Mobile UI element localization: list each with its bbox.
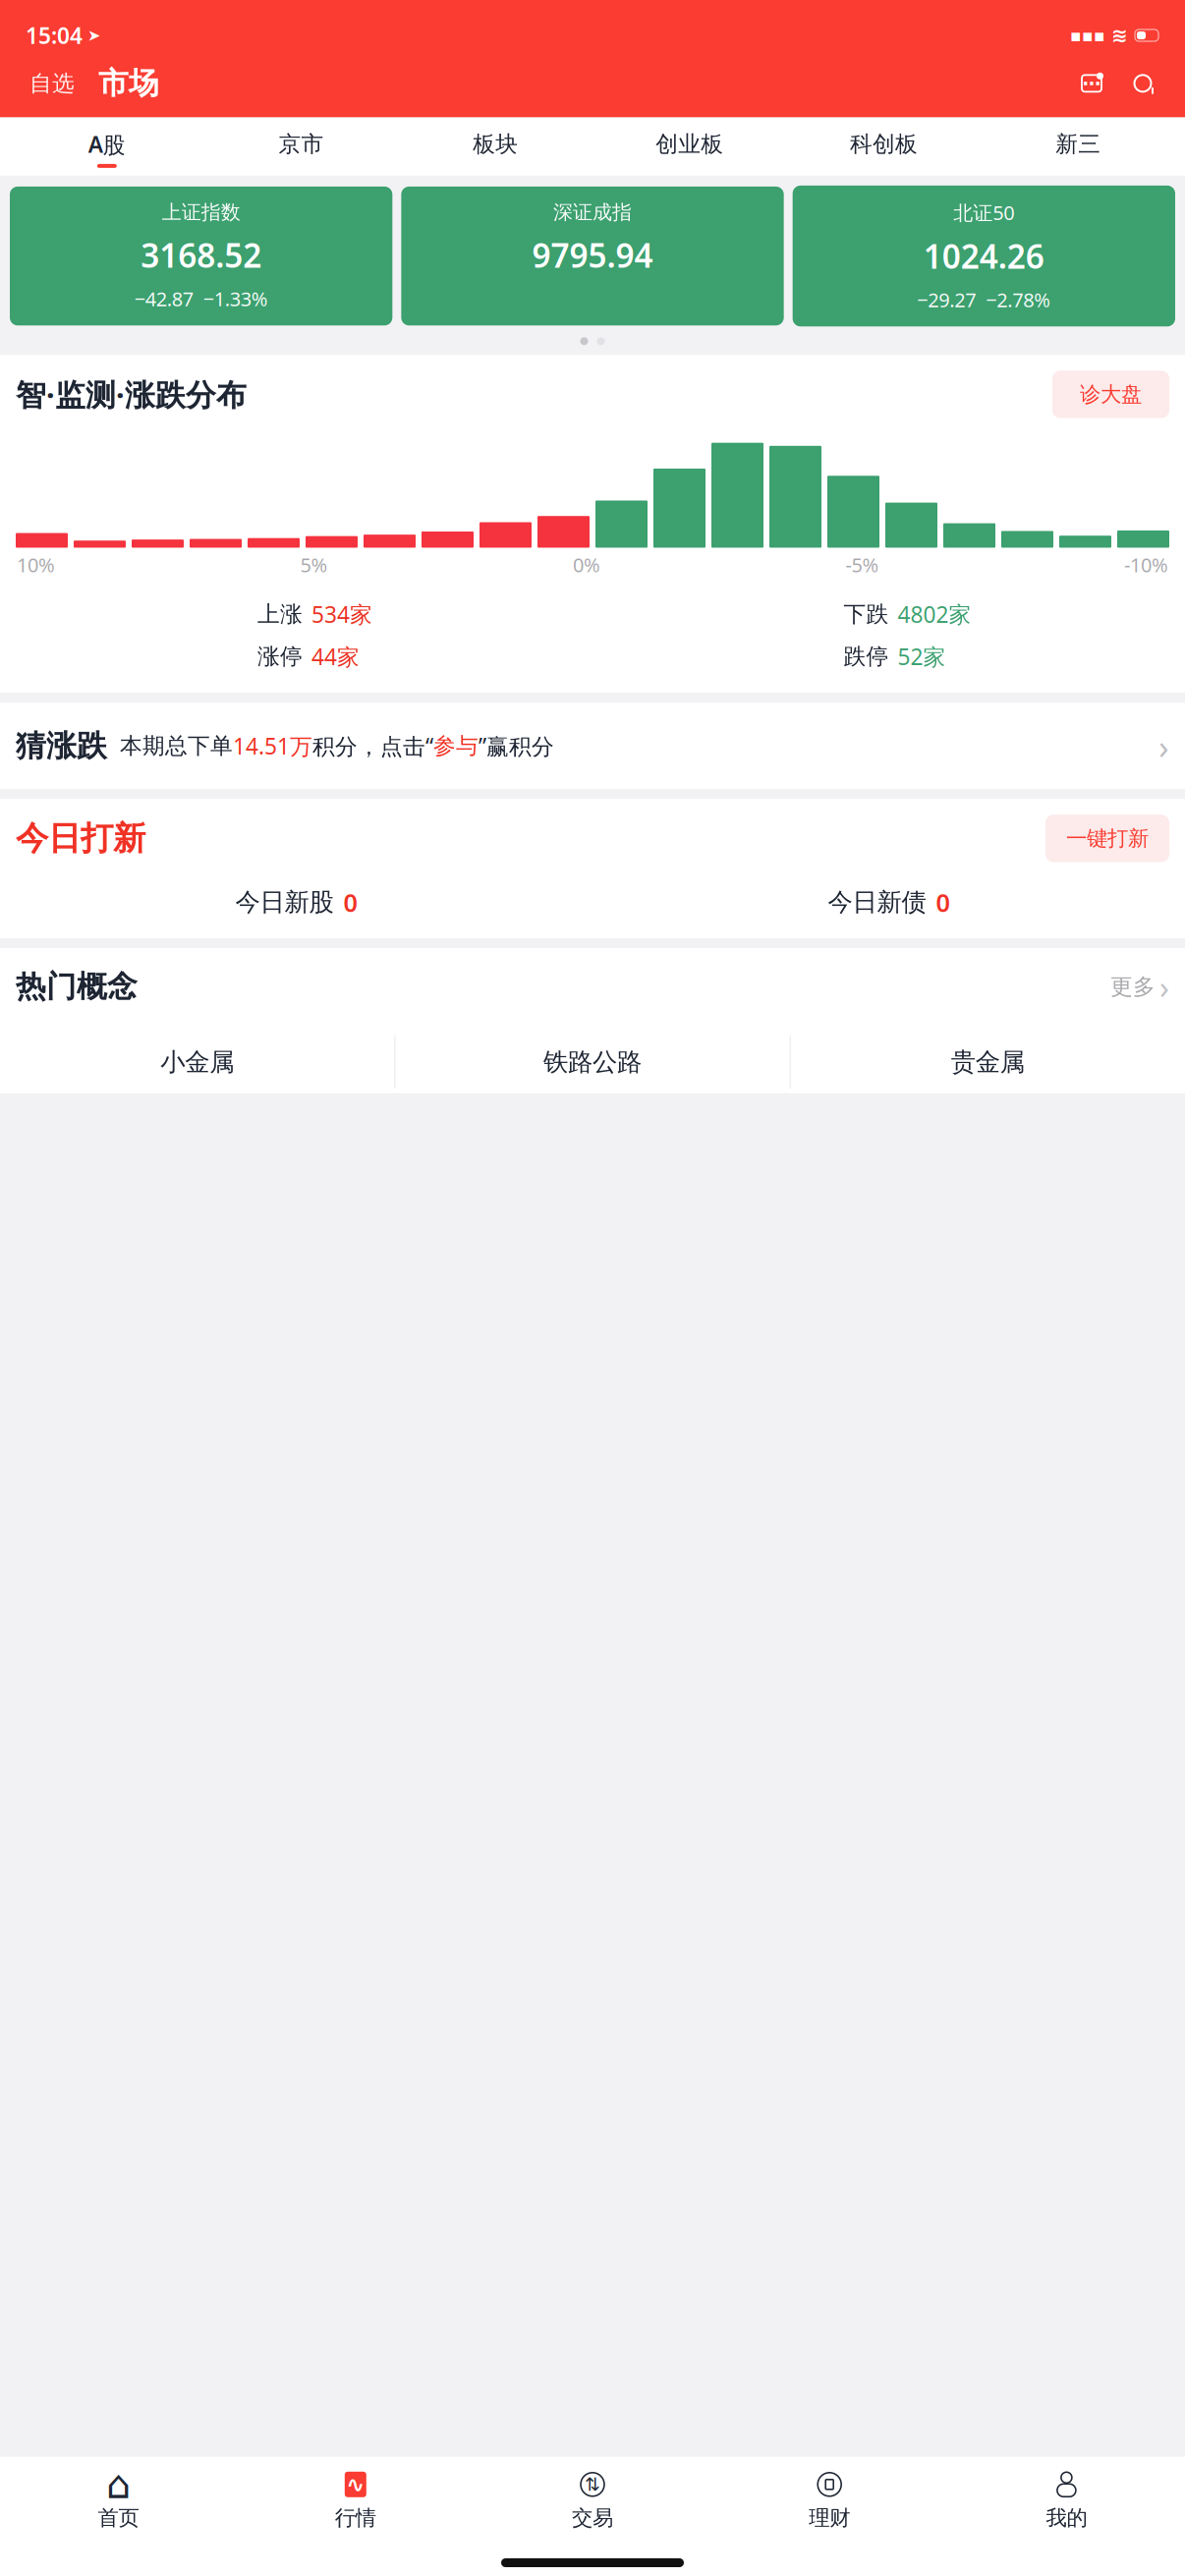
button[interactable]: 自选	[26, 64, 79, 103]
staticText: 猜涨跌	[16, 727, 107, 764]
staticText: 今日新股	[235, 887, 334, 917]
staticText: 今日打新	[16, 818, 145, 858]
staticText: 我的	[1046, 2505, 1087, 2531]
staticText: 小金属	[160, 1047, 234, 1077]
button[interactable]: 贵金属	[791, 1031, 1185, 1093]
staticText: 3168.52	[141, 233, 262, 277]
staticText: A股	[88, 129, 126, 159]
staticText: 0	[936, 886, 950, 919]
staticText: 参与	[433, 732, 479, 760]
staticText: 15:04	[26, 21, 83, 50]
staticText: 行情	[335, 2505, 376, 2531]
button[interactable]: 小金属	[0, 1031, 394, 1093]
button[interactable]: 创业板	[592, 131, 787, 175]
button[interactable]: 一键打新	[1045, 815, 1169, 862]
staticText: 热门概念	[16, 968, 138, 1005]
button[interactable]: ⌂	[0, 2467, 237, 2535]
staticText: 深证成指	[553, 200, 632, 224]
staticText: ⇅	[585, 2474, 600, 2495]
staticText: 智·监测·涨跌分布	[16, 374, 247, 414]
staticText: 52家	[898, 642, 946, 671]
staticText: −29.27 −2.78%	[917, 287, 1051, 313]
staticText: ”赢积分	[479, 731, 554, 761]
staticText: 自选	[29, 70, 75, 97]
staticText: 科创板	[850, 131, 918, 158]
staticText: ⋯	[1082, 73, 1101, 94]
staticText: 4802家	[898, 599, 971, 629]
button[interactable]: 猜涨跌	[0, 703, 1185, 789]
button[interactable]: 科创板	[787, 131, 981, 175]
staticText: ›	[1158, 723, 1169, 768]
staticText: ⌂	[106, 2462, 131, 2507]
button[interactable]: 消息	[1075, 67, 1108, 100]
staticText: 涨停	[257, 643, 303, 670]
staticText: 上涨	[257, 600, 303, 628]
button[interactable]: 板块	[398, 131, 592, 175]
button[interactable]: 今日新债	[592, 886, 1185, 919]
button[interactable]: 铁路公路	[395, 1031, 790, 1093]
staticText: -5%	[846, 552, 879, 578]
staticText: 京市	[279, 131, 324, 158]
button[interactable]: ⇅	[474, 2467, 711, 2535]
staticText: 理财	[809, 2505, 850, 2531]
button[interactable]: 北证50	[793, 186, 1175, 326]
staticText: -10%	[1124, 552, 1168, 578]
staticText: 下跌	[844, 600, 889, 628]
button[interactable]: 上证指数	[10, 187, 392, 325]
staticText: 44家	[311, 642, 360, 671]
staticText: 0%	[573, 552, 600, 578]
staticText: 积分，点击“	[312, 731, 433, 761]
staticText: 0	[343, 886, 357, 919]
staticText: −42.87 −1.33%	[134, 286, 268, 312]
staticText: 10%	[17, 552, 55, 578]
staticText: 1024.26	[923, 234, 1044, 278]
staticText: ➤	[87, 26, 100, 44]
button[interactable]: 京市	[204, 131, 398, 175]
button[interactable]: 更多	[1110, 966, 1169, 1008]
staticText: 市场	[98, 65, 159, 102]
staticText: 上证指数	[162, 200, 240, 224]
staticText: 9795.94	[532, 233, 653, 277]
staticText: 跌停	[844, 643, 889, 670]
staticText: 一键打新	[1066, 826, 1149, 851]
button[interactable]: 新三	[981, 131, 1175, 175]
staticText: 新三	[1055, 131, 1101, 158]
staticText: 诊大盘	[1080, 381, 1142, 407]
staticText: 14.51万	[233, 731, 312, 761]
button[interactable]: 今日新股	[0, 886, 592, 919]
staticText: 534家	[311, 599, 372, 629]
staticText: ▪▪▪	[1070, 26, 1105, 45]
staticText: 铁路公路	[543, 1047, 642, 1077]
staticText: 本期总下单	[120, 732, 233, 760]
staticText: 创业板	[656, 131, 723, 158]
staticText: 北证50	[953, 199, 1014, 225]
button[interactable]: 理财	[711, 2467, 948, 2535]
staticText: ∿	[346, 2472, 365, 2497]
staticText: 板块	[473, 131, 518, 158]
button[interactable]: ∿	[237, 2467, 474, 2535]
staticText: 贵金属	[951, 1047, 1025, 1077]
staticText: ›	[1159, 966, 1169, 1008]
staticText: 交易	[572, 2505, 613, 2531]
button[interactable]: 市场	[92, 63, 165, 104]
staticText: 今日新债	[828, 887, 926, 917]
staticText: 首页	[98, 2505, 139, 2531]
staticText: 5%	[300, 552, 328, 578]
button[interactable]: 诊大盘	[1052, 371, 1169, 418]
staticText: 更多	[1110, 973, 1156, 1000]
button[interactable]: A股	[10, 129, 204, 176]
button[interactable]: 深证成指	[401, 187, 784, 325]
button[interactable]: 我的	[948, 2467, 1185, 2535]
button[interactable]: 搜索	[1126, 67, 1159, 100]
staticText: ≋	[1111, 24, 1128, 47]
